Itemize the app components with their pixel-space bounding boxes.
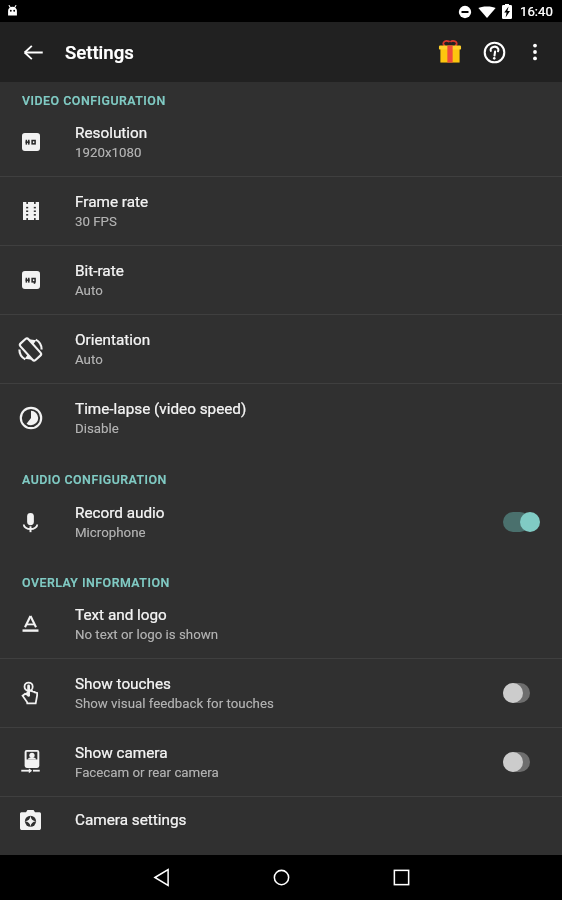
staticText: Frame rate — [75, 193, 149, 211]
staticText: Auto — [75, 283, 103, 299]
staticText: Bit-rate — [75, 262, 124, 280]
staticText: Camera settings — [75, 811, 187, 829]
button[interactable]: Recent apps — [363, 855, 439, 900]
staticText: Show visual feedback for touches — [75, 696, 274, 712]
staticText: Auto — [75, 352, 103, 368]
staticText: OVERLAY INFORMATION — [22, 575, 170, 590]
button[interactable]: Home — [243, 855, 319, 900]
staticText: Time-lapse (video speed) — [75, 400, 247, 418]
button[interactable]: Back — [123, 855, 199, 900]
button[interactable]: Gift — [428, 30, 472, 74]
button[interactable]: Off — [503, 680, 540, 706]
staticText: No text or logo is shown — [75, 627, 219, 643]
staticText: Text and logo — [75, 606, 167, 624]
button[interactable]: Show camera — [0, 728, 562, 796]
staticText: Microphone — [75, 525, 146, 541]
staticText: Show touches — [75, 675, 171, 693]
button[interactable]: Navigate up — [13, 32, 53, 72]
button[interactable]: Resolution — [0, 108, 562, 176]
button[interactable]: More options — [516, 33, 554, 71]
button[interactable]: Bit-rate — [0, 246, 562, 314]
staticText: 16:40 — [520, 4, 553, 19]
staticText: Orientation — [75, 331, 151, 349]
staticText: Resolution — [75, 124, 148, 142]
button[interactable]: On — [503, 509, 540, 535]
staticText: Settings — [65, 42, 134, 64]
staticText: AUDIO CONFIGURATION — [22, 472, 167, 487]
button[interactable]: Orientation — [0, 315, 562, 383]
button[interactable]: Record audio — [0, 488, 562, 556]
button[interactable]: Time-lapse (video speed) — [0, 384, 562, 452]
staticText: VIDEO CONFIGURATION — [22, 93, 166, 108]
staticText: Disable — [75, 421, 119, 437]
button[interactable]: Frame rate — [0, 177, 562, 245]
staticText: 30 FPS — [75, 214, 117, 230]
button[interactable]: Camera settings — [0, 797, 562, 843]
button[interactable]: Show touches — [0, 659, 562, 727]
button[interactable]: Help — [472, 30, 516, 74]
staticText: Show camera — [75, 744, 168, 762]
button[interactable]: Text and logo — [0, 590, 562, 658]
button[interactable]: Off — [503, 749, 540, 775]
staticText: 1920x1080 — [75, 145, 142, 161]
staticText: Record audio — [75, 504, 165, 522]
staticText: Facecam or rear camera — [75, 765, 219, 781]
